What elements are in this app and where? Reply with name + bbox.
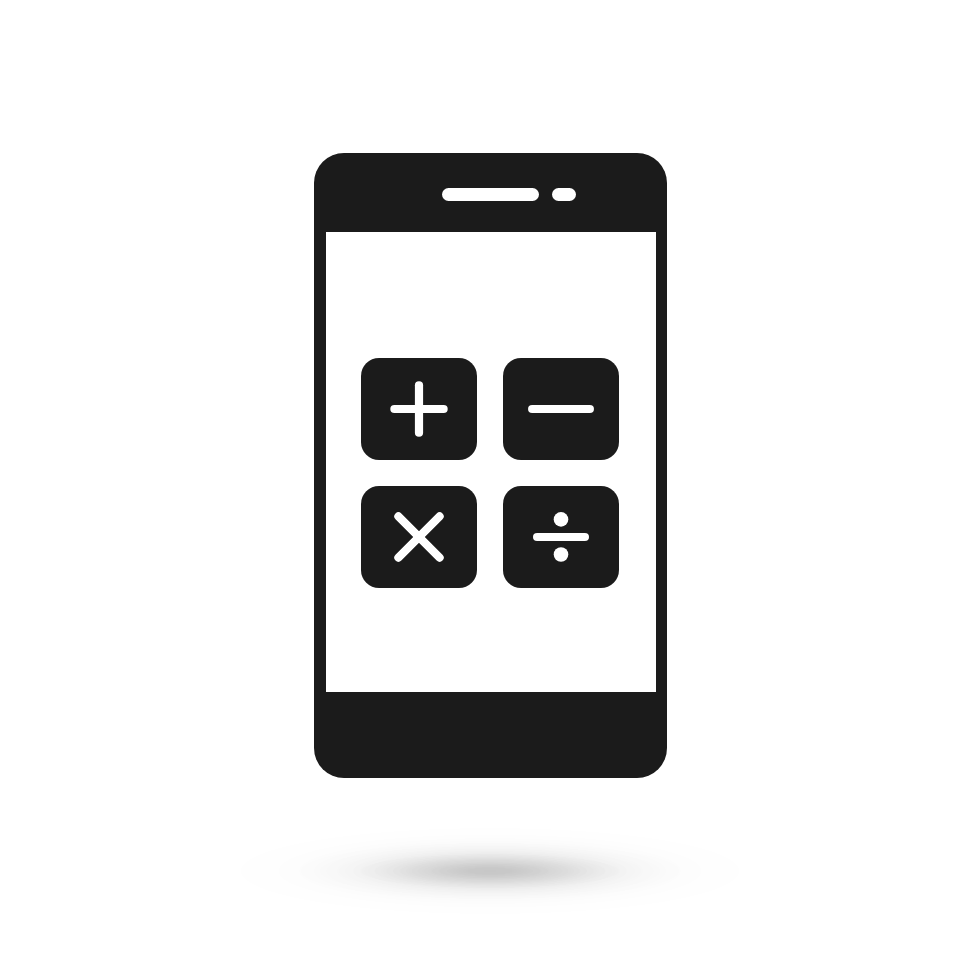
button[interactable]: Multiply <box>361 486 477 588</box>
button[interactable]: Subtract <box>503 358 619 460</box>
button[interactable]: Divide <box>503 486 619 588</box>
button[interactable]: Add <box>361 358 477 460</box>
